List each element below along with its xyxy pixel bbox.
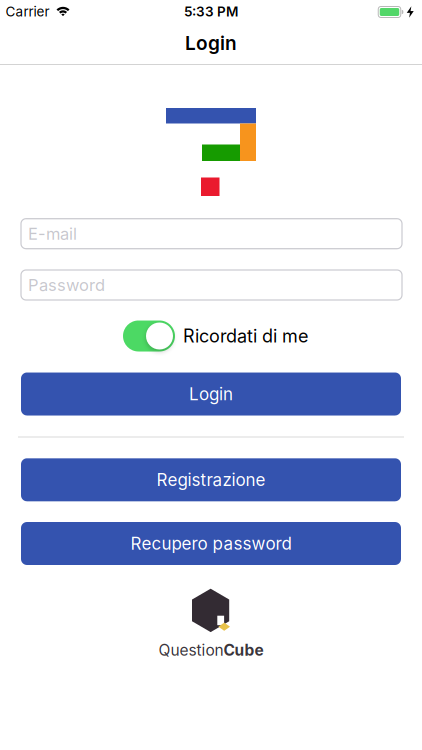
staticText: Cube	[223, 641, 263, 659]
staticText: Recupero password	[130, 533, 291, 554]
staticText: Ricordati di me	[183, 325, 308, 347]
staticText: Login	[189, 384, 233, 404]
button[interactable]: Recupero password	[21, 522, 401, 565]
button[interactable]: Ricordati di me	[123, 320, 308, 351]
staticText: Carrier	[5, 3, 49, 20]
staticText: Registrazione	[156, 469, 265, 490]
staticText: 5:33 PM	[184, 3, 238, 20]
staticText: Login	[185, 31, 237, 54]
staticText: E-mail	[28, 224, 77, 244]
button[interactable]: Registrazione	[21, 458, 401, 501]
staticText: Question	[158, 641, 223, 659]
button[interactable]: Login	[21, 372, 401, 415]
staticText: Password	[28, 275, 105, 295]
